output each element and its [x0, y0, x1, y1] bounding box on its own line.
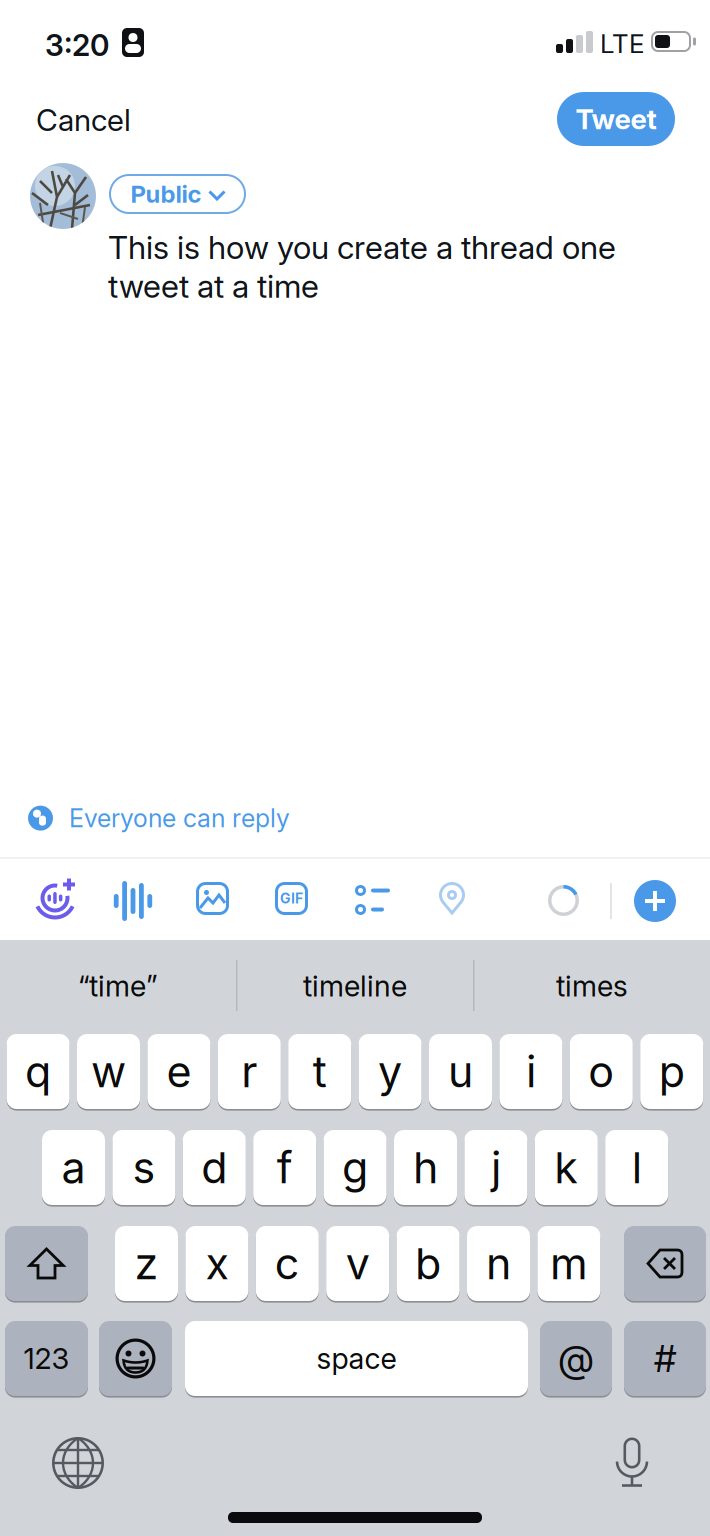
button[interactable]: Cancel — [36, 93, 186, 147]
staticText: c — [275, 1237, 300, 1289]
staticText: timeline — [303, 968, 407, 1004]
button[interactable]: n — [467, 1225, 530, 1302]
staticText: f — [277, 1141, 293, 1193]
button[interactable]: Everyone can reply — [28, 803, 290, 833]
staticText: j — [491, 1141, 501, 1193]
staticText: x — [205, 1237, 228, 1289]
button[interactable]: v — [326, 1225, 389, 1302]
button[interactable]: Shift — [5, 1225, 88, 1302]
button[interactable]: t — [288, 1033, 351, 1110]
staticText: s — [132, 1141, 155, 1193]
button[interactable]: c — [256, 1225, 319, 1302]
button[interactable]: f — [253, 1129, 316, 1206]
button[interactable]: q — [7, 1033, 70, 1110]
staticText: b — [415, 1237, 441, 1289]
staticText: w — [91, 1045, 126, 1097]
staticText: 123 — [23, 1341, 69, 1376]
button[interactable]: a — [42, 1129, 105, 1206]
staticText: y — [378, 1045, 402, 1097]
button[interactable]: Emoji — [99, 1320, 172, 1397]
button[interactable]: Tweet — [557, 92, 675, 146]
staticText: r — [241, 1045, 257, 1097]
staticText: k — [554, 1141, 578, 1193]
button[interactable]: “time” — [0, 951, 236, 1021]
button[interactable]: i — [499, 1033, 562, 1110]
staticText: o — [588, 1045, 614, 1097]
staticText: v — [346, 1237, 370, 1289]
button[interactable]: # — [624, 1320, 706, 1397]
staticText: u — [448, 1045, 473, 1097]
button[interactable]: Tag location — [436, 882, 468, 916]
button[interactable]: r — [218, 1033, 281, 1110]
button[interactable]: Add another Tweet — [634, 880, 676, 922]
staticText: 3:20 — [45, 27, 109, 63]
button[interactable]: space — [185, 1320, 528, 1397]
staticText: # — [654, 1336, 676, 1381]
staticText: d — [201, 1141, 227, 1193]
button[interactable]: z — [115, 1225, 178, 1302]
staticText: q — [25, 1045, 51, 1097]
staticText: z — [134, 1237, 158, 1289]
button[interactable]: s — [112, 1129, 175, 1206]
staticText: This is how you create a thread one twee… — [108, 228, 616, 305]
staticText: l — [632, 1141, 642, 1193]
button[interactable]: b — [397, 1225, 460, 1302]
button[interactable]: w — [77, 1033, 140, 1110]
staticText: a — [61, 1141, 85, 1193]
button[interactable]: Dictate — [613, 1437, 651, 1487]
staticText: space — [316, 1341, 396, 1376]
staticText: i — [526, 1045, 536, 1097]
button[interactable]: times — [474, 951, 710, 1021]
button[interactable]: @ — [540, 1320, 612, 1397]
button[interactable]: d — [183, 1129, 246, 1206]
staticText: GIF — [280, 890, 303, 907]
button[interactable]: o — [570, 1033, 633, 1110]
button[interactable]: timeline — [237, 951, 473, 1021]
staticText: t — [313, 1045, 327, 1097]
button[interactable]: u — [429, 1033, 492, 1110]
button[interactable]: m — [537, 1225, 600, 1302]
staticText: @ — [558, 1336, 594, 1381]
button[interactable]: Poll — [355, 882, 390, 918]
staticText: times — [556, 968, 628, 1004]
button[interactable]: p — [640, 1033, 703, 1110]
button[interactable]: Next keyboard — [52, 1437, 104, 1489]
staticText: Cancel — [36, 102, 131, 138]
staticText: Public — [130, 179, 201, 208]
button[interactable]: k — [535, 1129, 598, 1206]
button[interactable]: 123 — [5, 1320, 88, 1397]
button[interactable]: j — [464, 1129, 527, 1206]
staticText: Everyone can reply — [69, 803, 290, 833]
staticText: Tweet — [575, 102, 656, 136]
button[interactable]: h — [394, 1129, 457, 1206]
staticText: n — [486, 1237, 511, 1289]
staticText: LTE — [600, 28, 644, 59]
staticText: “time” — [78, 968, 158, 1004]
button[interactable]: x — [185, 1225, 248, 1302]
button[interactable]: Public — [109, 174, 246, 214]
staticText: e — [166, 1045, 191, 1097]
staticText: p — [659, 1045, 685, 1097]
button[interactable]: Voice note — [115, 880, 151, 922]
button[interactable]: Delete — [624, 1225, 706, 1302]
staticText: h — [413, 1141, 438, 1193]
staticText: m — [550, 1237, 588, 1289]
staticText: g — [342, 1141, 368, 1193]
button[interactable]: l — [605, 1129, 668, 1206]
button[interactable]: y — [359, 1033, 422, 1110]
button[interactable]: e — [147, 1033, 210, 1110]
button[interactable]: Photos — [196, 882, 229, 915]
button[interactable]: GIF — [275, 882, 308, 915]
button[interactable]: Spaces — [35, 878, 77, 920]
button[interactable]: g — [324, 1129, 387, 1206]
